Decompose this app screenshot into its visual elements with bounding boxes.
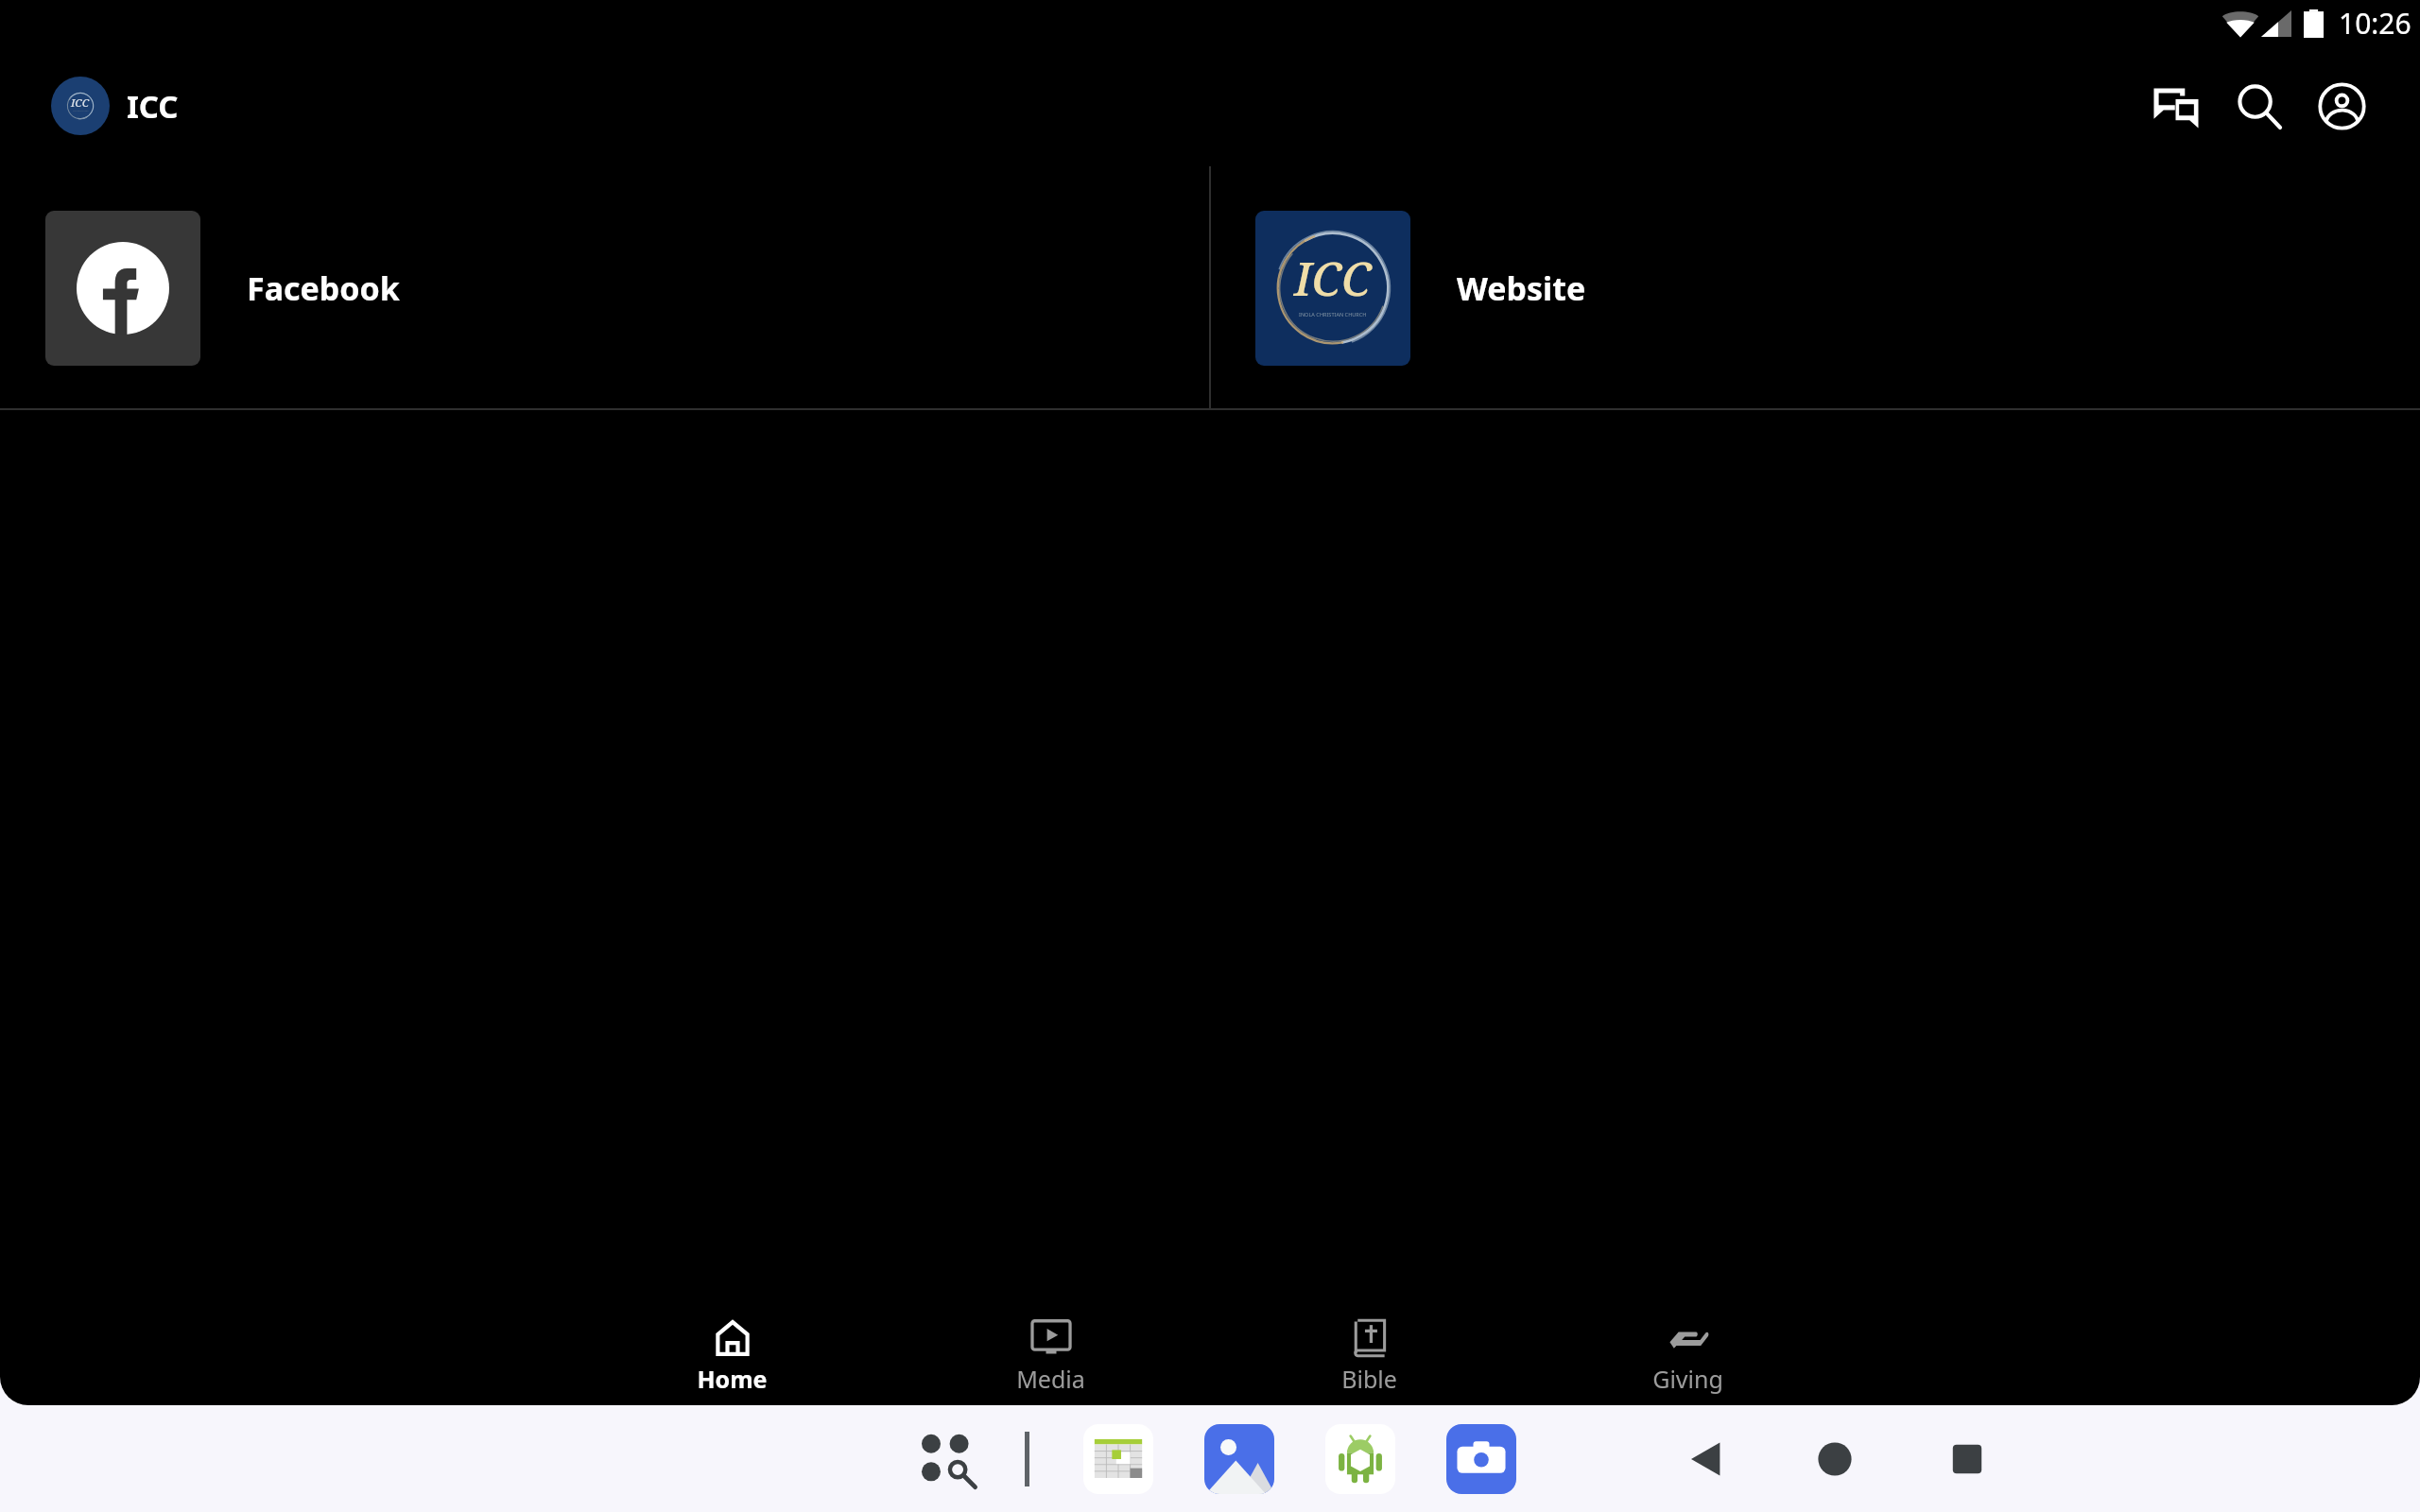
button[interactable]: Bible [1210,1294,1529,1405]
staticText: INOLA CHRISTIAN CHURCH [73,111,89,112]
button[interactable]: Home [1797,1421,1873,1497]
staticText: INOLA CHRISTIAN CHURCH [1299,311,1367,318]
staticText: ICC [71,95,90,111]
button[interactable]: Home [573,1294,891,1405]
button[interactable]: App [1446,1424,1516,1494]
button[interactable]: Media [891,1294,1210,1405]
button[interactable]: App [1083,1424,1153,1494]
button[interactable]: Messages [2134,64,2217,147]
staticText: Media [1016,1363,1085,1395]
button[interactable]: App [1204,1424,1274,1494]
staticText: Website [1457,266,1586,310]
button[interactable]: All apps [912,1424,982,1494]
button[interactable]: Recents [1929,1421,2005,1497]
staticText: Bible [1341,1363,1397,1395]
button[interactable]: ICC [51,77,110,135]
button[interactable]: Back [1668,1421,1744,1497]
button[interactable]: Facebook [0,166,1210,410]
staticText: Giving [1652,1363,1723,1395]
staticText: Facebook [247,266,400,310]
button[interactable]: ICC [1210,166,2420,410]
staticText: ICC [1294,246,1372,309]
staticText: 10:26 [2339,4,2411,43]
staticText: Home [697,1363,768,1395]
button[interactable]: Account [2300,64,2383,147]
button[interactable]: Giving [1529,1294,1847,1405]
button[interactable]: App [1325,1424,1395,1494]
button[interactable]: Search [2217,64,2300,147]
staticText: ICC [127,85,179,128]
